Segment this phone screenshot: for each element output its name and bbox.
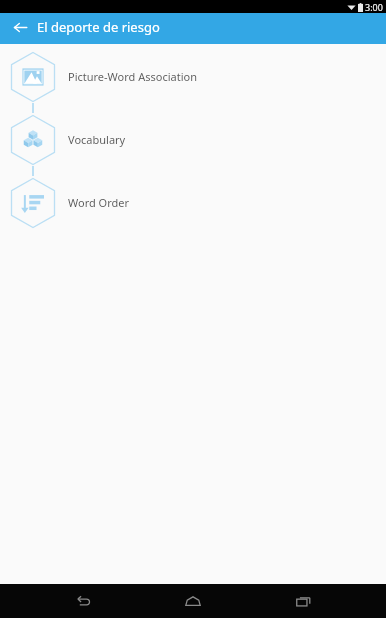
button[interactable]: Back bbox=[63, 584, 103, 618]
button[interactable]: Word Order bbox=[0, 176, 386, 229]
button[interactable]: Picture-Word Association bbox=[0, 50, 386, 103]
staticText: Picture-Word Association bbox=[68, 69, 197, 84]
staticText: El deporte de riesgo bbox=[37, 18, 160, 36]
button[interactable]: Vocabulary bbox=[0, 113, 386, 166]
staticText: 3:00 bbox=[365, 1, 383, 13]
button[interactable]: Back bbox=[6, 13, 34, 41]
button[interactable]: Home bbox=[173, 584, 213, 618]
staticText: Vocabulary bbox=[68, 132, 126, 147]
staticText: Word Order bbox=[68, 195, 130, 210]
button[interactable]: Recent apps bbox=[283, 584, 323, 618]
